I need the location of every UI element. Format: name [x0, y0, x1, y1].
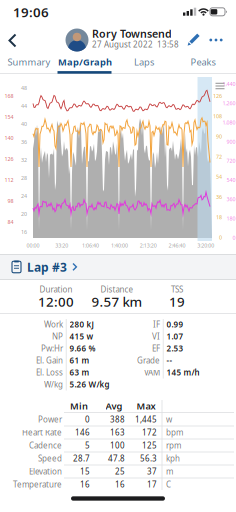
staticText: 168 [4, 92, 13, 100]
staticText: 16 [21, 228, 27, 236]
staticText: El. Loss [36, 367, 63, 378]
staticText: 1.07 [166, 331, 183, 342]
staticText: Duration [39, 284, 72, 295]
staticText: 5 [85, 440, 90, 451]
staticText: 9.57 km [91, 293, 142, 310]
staticText: 17 [147, 479, 157, 490]
staticText: 280 kJ [69, 319, 93, 330]
staticText: 15 [80, 466, 90, 477]
staticText: Pw:Hr [41, 343, 63, 354]
staticText: Elevation [29, 466, 62, 477]
staticText: Min [70, 400, 88, 412]
staticText: 40 [21, 120, 27, 128]
staticText: 47.8 [108, 453, 125, 464]
button[interactable]: More [206, 31, 226, 49]
staticText: Max [136, 400, 155, 412]
staticText: 163 [110, 427, 125, 438]
staticText: 9.66 % [69, 343, 95, 354]
staticText: Lap #3 [27, 259, 67, 275]
staticText: 5.26 W/kg [69, 379, 109, 390]
staticText: 48 [21, 84, 27, 92]
staticText: IF [153, 319, 160, 330]
staticText: 720 [226, 157, 235, 164]
button[interactable]: Peaks [174, 53, 232, 71]
staticText: -- [166, 355, 172, 366]
staticText: 28.7 [73, 453, 90, 464]
staticText: 84 [7, 218, 13, 226]
staticText: 112 [4, 176, 13, 184]
staticText: El. Gain [36, 355, 63, 366]
staticText: 54 [216, 173, 222, 180]
staticText: 2:13:20 [140, 242, 157, 249]
staticText: 0 [232, 234, 235, 241]
staticText: Work [44, 319, 63, 330]
staticText: Power [38, 414, 62, 425]
staticText: Grade [137, 355, 160, 366]
staticText: 900 [226, 138, 235, 145]
staticText: NP [52, 331, 63, 342]
staticText: 180 [226, 215, 235, 222]
staticText: 18 [216, 214, 222, 221]
staticText: bpm [166, 427, 183, 438]
staticText: 108 [213, 113, 222, 120]
staticText: 540 [226, 176, 235, 184]
staticText: 27 August 2022 13:58 [92, 39, 179, 50]
staticText: Distance [100, 284, 133, 295]
staticText: VI [152, 331, 160, 342]
button[interactable]: Map/Graph [56, 53, 114, 71]
staticText: VAM [144, 367, 160, 378]
staticText: 56.3 [140, 453, 157, 464]
staticText: 125 [142, 440, 157, 451]
staticText: 0 [219, 234, 222, 241]
staticText: rpm [166, 440, 181, 451]
staticText: 388 [110, 414, 125, 425]
staticText: 98 [7, 197, 13, 205]
button[interactable]: Laps [115, 53, 173, 71]
staticText: kph [166, 453, 180, 464]
staticText: Speed [38, 453, 62, 464]
staticText: 1,260 [222, 100, 235, 107]
staticText: 1,080 [222, 119, 235, 126]
staticText: 0.99 [166, 319, 183, 330]
staticText: Heart Rate [22, 427, 62, 438]
staticText: 172 [142, 427, 157, 438]
staticText: 360 [226, 196, 235, 203]
staticText: 0 [85, 414, 90, 425]
staticText: 19 [169, 293, 185, 310]
button[interactable]: Summary [0, 53, 58, 71]
staticText: 2:46:40 [168, 242, 185, 249]
staticText: m [166, 466, 173, 477]
staticText: Summary [7, 56, 50, 68]
button[interactable]: Chart settings [214, 81, 226, 91]
staticText: 20 [21, 210, 27, 218]
staticText: 1,445 [135, 414, 157, 425]
staticText: C [166, 479, 171, 490]
staticText: 25 [115, 466, 125, 477]
button[interactable]: Back [6, 33, 19, 48]
staticText: 1:40:00 [111, 242, 128, 249]
staticText: 72 [216, 153, 222, 160]
staticText: 44 [21, 102, 27, 110]
button[interactable]: Edit [186, 30, 202, 48]
staticText: 3:20:00 [197, 242, 214, 249]
staticText: 61 m [69, 355, 89, 366]
staticText: Avg [105, 400, 122, 412]
staticText: 415 w [69, 331, 93, 342]
staticText: 145 m/h [166, 367, 199, 378]
staticText: 33:20 [55, 242, 68, 249]
staticText: 32 [21, 156, 27, 164]
staticText: 1,440 [222, 80, 235, 88]
staticText: Map/Graph [58, 56, 112, 68]
staticText: 90 [216, 133, 222, 140]
staticText: 154 [4, 113, 13, 121]
staticText: 126 [4, 155, 13, 163]
staticText: 19:06 [13, 3, 49, 21]
staticText: Cadence [29, 440, 62, 451]
button[interactable]: Lap #3 [0, 254, 236, 280]
staticText: 12:00 [38, 293, 74, 310]
staticText: 16 [80, 479, 90, 490]
staticText: Peaks [190, 56, 215, 68]
staticText: 140 [4, 134, 13, 142]
staticText: EF [152, 343, 160, 354]
staticText: 126 [213, 92, 222, 100]
